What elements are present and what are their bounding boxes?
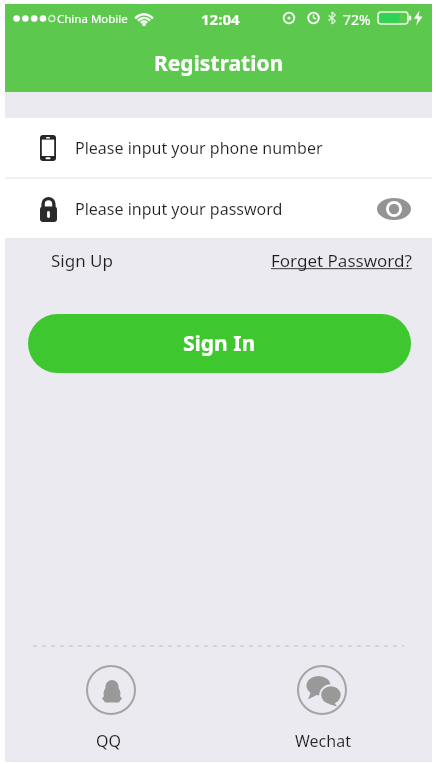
staticText: Forget Password? <box>271 249 412 272</box>
staticText: Sign Up <box>51 249 113 272</box>
staticText: QQ <box>96 730 121 750</box>
staticText: Registration <box>154 49 284 78</box>
staticText: Please input your password <box>75 198 283 220</box>
staticText: Wechat <box>295 730 351 750</box>
staticText: China Mobile <box>57 11 128 27</box>
staticText: 12:04 <box>201 9 240 29</box>
staticText: 72% <box>343 10 371 29</box>
staticText: Please input your phone number <box>75 137 323 159</box>
staticText: Sign In <box>183 329 256 358</box>
